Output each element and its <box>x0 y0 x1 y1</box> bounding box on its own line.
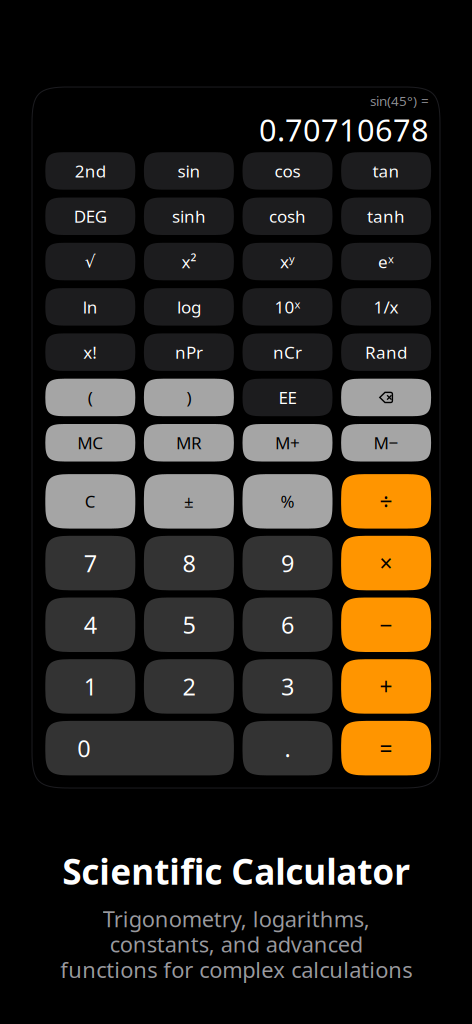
staticText: constants, and advanced <box>109 930 362 959</box>
button[interactable]: nCr <box>242 333 332 371</box>
staticText: MC <box>77 431 103 454</box>
staticText: ÷ <box>380 486 393 516</box>
staticText: = <box>380 733 393 763</box>
button[interactable]: log <box>144 288 234 326</box>
button[interactable]: tan <box>341 152 431 190</box>
staticText: 7 <box>84 547 97 579</box>
button[interactable]: Delete <box>341 379 431 416</box>
staticText: nPr <box>175 341 203 363</box>
button[interactable]: 2 <box>144 659 234 714</box>
staticText: cosh <box>269 205 306 228</box>
button[interactable]: Plus minus <box>144 474 234 529</box>
button[interactable]: 8 <box>144 536 234 590</box>
staticText: 3 <box>281 671 294 702</box>
button[interactable]: MC <box>45 424 135 461</box>
button[interactable]: 1 <box>45 659 135 714</box>
button[interactable]: sin <box>144 152 234 190</box>
staticText: x! <box>83 341 97 363</box>
staticText: × <box>380 548 393 578</box>
button[interactable]: 9 <box>242 536 332 590</box>
button[interactable]: M+ <box>242 424 332 461</box>
button[interactable]: 10ˣ <box>242 288 332 326</box>
staticText: ± <box>184 490 194 512</box>
button[interactable]: Decimal point <box>242 721 332 775</box>
button[interactable]: x! <box>45 333 135 371</box>
button[interactable]: ( <box>45 379 135 416</box>
staticText: ( <box>88 386 93 409</box>
button[interactable]: DEG <box>45 197 135 235</box>
button[interactable]: 5 <box>144 597 234 652</box>
button[interactable]: 2nd <box>45 152 135 190</box>
staticText: 0.70710678 <box>259 109 429 150</box>
staticText: √ <box>85 252 96 271</box>
staticText: . <box>284 733 290 764</box>
button[interactable]: 4 <box>45 597 135 652</box>
button[interactable]: Equals <box>341 721 431 775</box>
staticText: M− <box>374 431 399 454</box>
staticText: 5 <box>182 609 195 640</box>
staticText: + <box>380 671 393 701</box>
staticText: Scientific Calculator <box>62 848 410 894</box>
button[interactable]: Rand <box>341 333 431 371</box>
staticText: tan <box>373 160 400 182</box>
button[interactable]: M− <box>341 424 431 461</box>
button[interactable]: sinh <box>144 197 234 235</box>
button[interactable]: ) <box>144 379 234 416</box>
staticText: nCr <box>273 341 302 363</box>
button[interactable]: √ <box>45 243 135 280</box>
staticText: sin <box>177 160 200 182</box>
staticText: − <box>380 610 393 640</box>
staticText: sin(45°) = <box>370 92 429 110</box>
staticText: cos <box>274 160 300 182</box>
staticText: functions for complex calculations <box>60 955 412 984</box>
button[interactable]: cos <box>242 152 332 190</box>
button[interactable]: xʸ <box>242 243 332 280</box>
staticText: DEG <box>74 205 107 228</box>
button[interactable]: EE <box>242 379 332 416</box>
button[interactable]: eˣ <box>341 243 431 280</box>
staticText: ) <box>186 386 191 409</box>
button[interactable]: x² <box>144 243 234 280</box>
staticText: ln <box>83 295 98 318</box>
staticText: 9 <box>281 547 294 579</box>
staticText: 1/x <box>374 295 399 318</box>
button[interactable]: ln <box>45 288 135 326</box>
staticText: 0 <box>77 733 90 764</box>
button[interactable]: tanh <box>341 197 431 235</box>
staticText: M+ <box>275 431 300 454</box>
staticText: 2 <box>182 671 195 702</box>
button[interactable]: 7 <box>45 536 135 590</box>
button[interactable]: 3 <box>242 659 332 714</box>
button[interactable]: nPr <box>144 333 234 371</box>
staticText: 6 <box>281 609 294 640</box>
button[interactable]: 6 <box>242 597 332 652</box>
staticText: xʸ <box>280 250 295 273</box>
staticText: tanh <box>367 205 405 228</box>
staticText: log <box>177 295 201 318</box>
staticText: Rand <box>365 341 407 363</box>
button[interactable]: Minus <box>341 597 431 652</box>
staticText: % <box>280 490 294 512</box>
button[interactable]: 0 <box>45 721 234 775</box>
staticText: 8 <box>182 547 195 579</box>
staticText: Trigonometry, logarithms, <box>102 904 369 933</box>
staticText: 1 <box>84 671 97 702</box>
staticText: x² <box>181 250 196 273</box>
staticText: MR <box>176 431 202 454</box>
staticText: C <box>85 490 96 512</box>
button[interactable]: Clear <box>45 474 135 529</box>
staticText: sinh <box>172 205 206 228</box>
staticText: 4 <box>84 609 97 640</box>
button[interactable]: Percent <box>242 474 332 529</box>
staticText: eˣ <box>378 250 394 273</box>
staticText: 2nd <box>75 160 106 182</box>
button[interactable]: Plus <box>341 659 431 714</box>
staticText: 10ˣ <box>274 295 300 318</box>
button[interactable]: 1/x <box>341 288 431 326</box>
button[interactable]: MR <box>144 424 234 461</box>
button[interactable]: Divide <box>341 474 431 529</box>
button[interactable]: cosh <box>242 197 332 235</box>
staticText: EE <box>278 386 296 409</box>
button[interactable]: Multiply <box>341 536 431 590</box>
